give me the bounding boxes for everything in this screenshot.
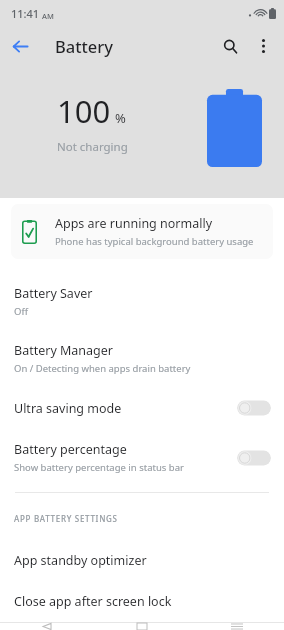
button[interactable]: Battery Manager bbox=[0, 330, 284, 387]
staticText: App standby optimizer bbox=[14, 552, 147, 569]
button[interactable]: Battery percentage bbox=[0, 429, 284, 486]
button[interactable]: Close app after screen lock bbox=[0, 581, 284, 622]
staticText: Battery percentage bbox=[14, 441, 127, 458]
button[interactable]: More options bbox=[248, 31, 278, 61]
button[interactable]: Back bbox=[0, 623, 94, 630]
staticText: Off bbox=[14, 305, 28, 318]
button[interactable]: Recent apps bbox=[189, 623, 284, 630]
button[interactable]: App standby optimizer bbox=[0, 540, 284, 581]
staticText: 11:41 bbox=[11, 6, 40, 21]
button[interactable]: Battery Saver bbox=[0, 273, 284, 330]
staticText: APP BATTERY SETTINGS bbox=[14, 513, 118, 524]
staticText: Close app after screen lock bbox=[14, 593, 172, 610]
staticText: AM bbox=[42, 11, 54, 21]
button[interactable]: Home bbox=[94, 623, 189, 630]
staticText: Not charging bbox=[57, 139, 128, 155]
staticText: On / Detecting when apps drain battery bbox=[14, 362, 191, 375]
staticText: Apps are running normally bbox=[55, 215, 213, 232]
button[interactable]: Back bbox=[6, 32, 34, 60]
button[interactable]: Toggle off bbox=[237, 399, 271, 417]
staticText: Battery Manager bbox=[14, 342, 113, 359]
button[interactable]: Search bbox=[214, 30, 246, 62]
staticText: % bbox=[115, 109, 126, 127]
button[interactable]: Toggle off bbox=[237, 449, 271, 467]
staticText: 100 bbox=[57, 90, 111, 132]
staticText: Phone has typical background battery usa… bbox=[55, 235, 254, 248]
button[interactable]: Apps are running normally bbox=[11, 204, 273, 259]
staticText: Battery bbox=[55, 35, 114, 57]
staticText: Battery Saver bbox=[14, 285, 93, 302]
button[interactable]: Ultra saving mode bbox=[0, 387, 284, 429]
staticText: Ultra saving mode bbox=[14, 400, 122, 417]
staticText: Show battery percentage in status bar bbox=[14, 461, 184, 474]
